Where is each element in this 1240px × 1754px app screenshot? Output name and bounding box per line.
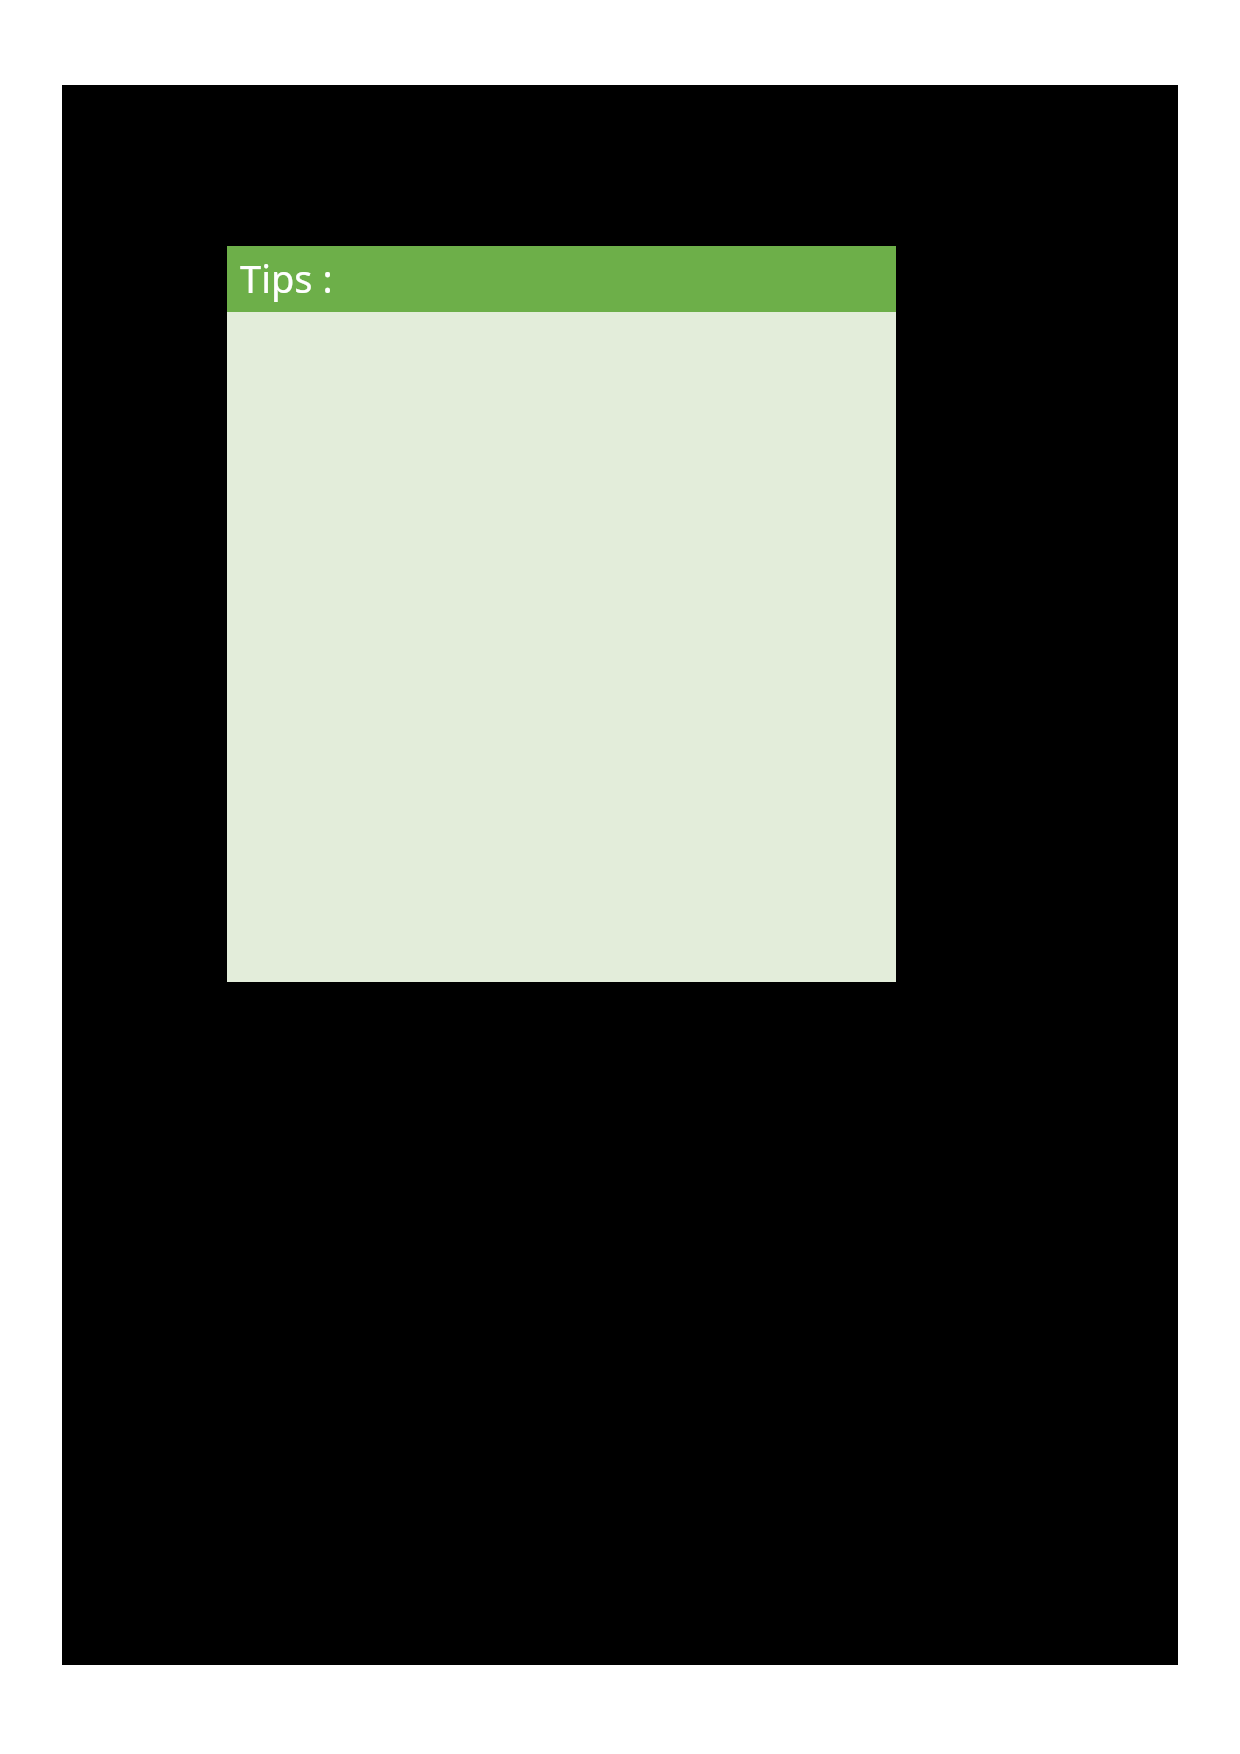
button[interactable]: Tips : (227, 246, 896, 982)
staticText: Tips : (240, 252, 333, 304)
